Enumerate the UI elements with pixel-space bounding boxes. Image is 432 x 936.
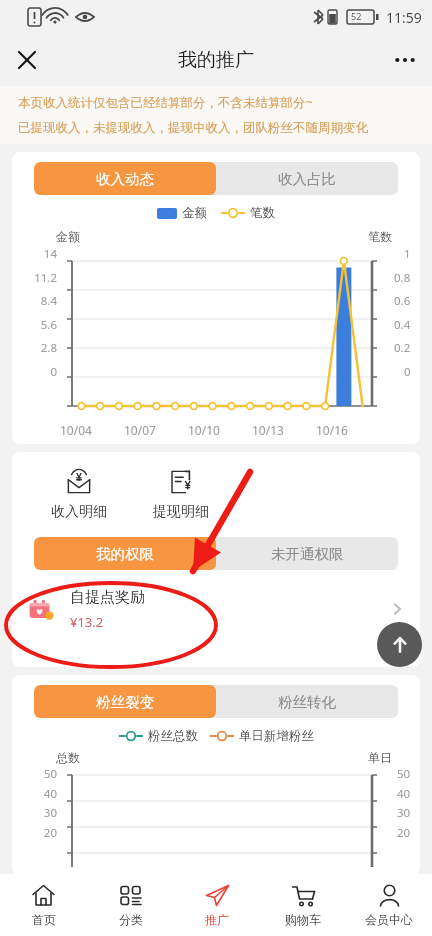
button[interactable]: Close [6, 39, 48, 81]
staticText: 52 [351, 10, 362, 22]
staticText: 40 [397, 786, 411, 802]
staticText: 1 [404, 246, 411, 262]
staticText: 未开通权限 [271, 545, 344, 563]
staticText: 10/04 [60, 422, 124, 438]
button[interactable]: Scroll to top [377, 622, 422, 667]
staticText: 20 [397, 825, 411, 841]
staticText: 2.8 [12, 340, 57, 356]
staticText: 0.8 [394, 270, 411, 286]
staticText: 0.4 [394, 317, 411, 333]
staticText: 金额 [182, 205, 207, 221]
staticText: 我的权限 [96, 545, 154, 563]
button[interactable]: 首页 [0, 874, 87, 936]
staticText: 本页收入统计仅包含已经结算部分，不含未结算部分~ [18, 94, 313, 111]
staticText: 14 [12, 246, 57, 262]
staticText: 推广 [205, 912, 229, 927]
staticText: 50 [397, 766, 411, 782]
staticText: 收入占比 [278, 170, 336, 188]
staticText: 自提点奖励 [70, 588, 145, 607]
staticText: 50 [12, 766, 57, 782]
staticText: 笔数 [368, 229, 392, 244]
button[interactable]: 我的权限 [34, 537, 216, 570]
staticText: 20 [12, 825, 57, 841]
button[interactable]: 提现明细 [142, 468, 220, 521]
staticText: 分类 [119, 912, 143, 927]
staticText: 粉丝转化 [278, 693, 336, 711]
staticText: 已提现收入，未提现收入，提现中收入，团队粉丝不随周期变化 [18, 120, 368, 136]
staticText: 30 [12, 805, 57, 821]
staticText: 收入动态 [96, 170, 154, 188]
staticText: 提现明细 [153, 503, 209, 521]
button[interactable]: 自提点奖励 [26, 582, 406, 636]
staticText: 单日 [368, 750, 392, 765]
staticText: 我的推广 [178, 48, 254, 72]
staticText: 10/07 [124, 422, 188, 438]
staticText: 10/16 [316, 422, 380, 438]
staticText: 购物车 [285, 912, 321, 927]
staticText: 30 [397, 805, 411, 821]
staticText: 金额 [56, 229, 80, 244]
button[interactable]: 购物车 [260, 874, 346, 936]
staticText: ¥13.2 [70, 613, 104, 631]
button[interactable]: 推广 [174, 874, 260, 936]
staticText: 笔数 [250, 205, 275, 221]
button[interactable]: 收入占比 [216, 162, 398, 195]
staticText: 总数 [56, 750, 80, 765]
staticText: 粉丝裂变 [96, 693, 154, 711]
staticText: 5.6 [12, 317, 57, 333]
staticText: 11:59 [386, 8, 422, 27]
button[interactable]: 分类 [87, 874, 174, 936]
staticText: 0 [12, 364, 57, 380]
staticText: 0.2 [394, 340, 411, 356]
staticText: 收入明细 [51, 503, 107, 521]
button[interactable]: 未开通权限 [216, 537, 398, 570]
staticText: 0.6 [394, 293, 411, 309]
staticText: 0 [404, 364, 411, 380]
button[interactable]: 收入动态 [34, 162, 216, 195]
staticText: 单日新增粉丝 [239, 728, 314, 744]
staticText: 8.4 [12, 293, 57, 309]
staticText: 40 [12, 786, 57, 802]
staticText: 10/13 [252, 422, 316, 438]
button[interactable]: 收入明细 [40, 468, 118, 521]
staticText: 会员中心 [365, 912, 413, 927]
staticText: 11.2 [12, 270, 57, 286]
button[interactable]: More options [384, 39, 426, 81]
button[interactable]: 会员中心 [346, 874, 432, 936]
staticText: 首页 [32, 912, 56, 927]
button[interactable]: 粉丝裂变 [34, 685, 216, 718]
staticText: 粉丝总数 [148, 728, 198, 744]
staticText: 10/10 [188, 422, 252, 438]
button[interactable]: 粉丝转化 [216, 685, 398, 718]
